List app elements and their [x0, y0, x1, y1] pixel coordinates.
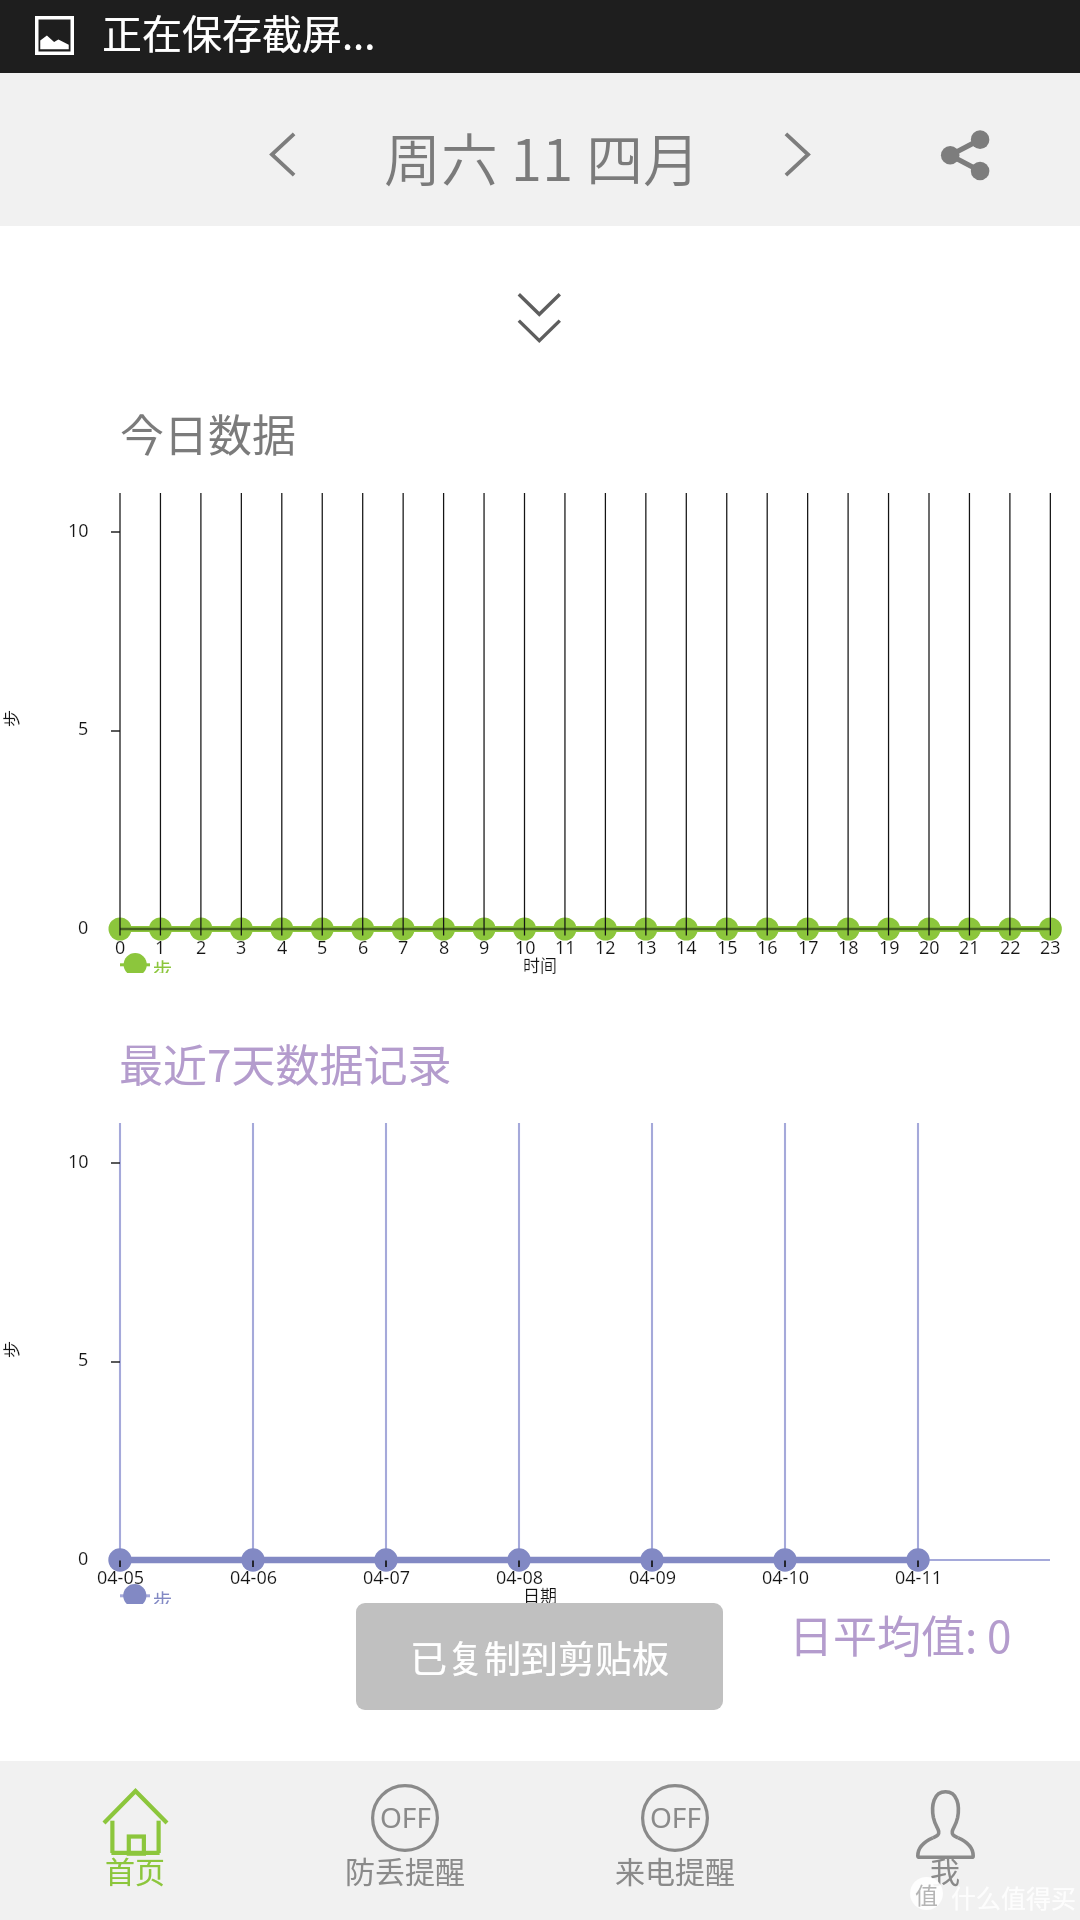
button[interactable]: Home: [0, 1761, 270, 1920]
staticText: 20: [919, 935, 940, 959]
staticText: 04-08: [496, 1565, 543, 1589]
button[interactable]: Next day: [752, 109, 842, 199]
staticText: 周六 11 四月: [384, 115, 701, 198]
staticText: 21: [959, 935, 980, 959]
staticText: 来电提醒: [615, 1848, 735, 1891]
staticText: 11: [555, 935, 576, 959]
staticText: 1: [155, 935, 166, 959]
staticText: 13: [636, 935, 657, 959]
staticText: 04-07: [363, 1565, 410, 1589]
staticText: OFF: [650, 1798, 701, 1836]
staticText: 04-05: [97, 1565, 144, 1589]
staticText: 0: [78, 1546, 89, 1571]
staticText: 5: [78, 716, 89, 741]
staticText: 已复制到剪贴板: [410, 1630, 669, 1684]
staticText: 日期: [523, 1582, 557, 1606]
button[interactable]: Incoming call reminder: [540, 1761, 810, 1920]
staticText: 12: [595, 935, 616, 959]
button[interactable]: Previous day: [238, 109, 328, 199]
staticText: 14: [676, 935, 697, 959]
staticText: 什么值得买: [951, 1879, 1077, 1915]
staticText: 首页: [105, 1848, 165, 1891]
staticText: 22: [1000, 935, 1021, 959]
staticText: 步: [153, 955, 173, 973]
staticText: 今日数据: [120, 401, 296, 465]
staticText: 5: [78, 1347, 89, 1372]
staticText: 最近7天数据记录: [119, 1031, 452, 1095]
staticText: 10: [68, 518, 89, 543]
staticText: 04-10: [762, 1565, 809, 1589]
staticText: 0: [78, 915, 89, 940]
staticText: 步: [0, 710, 23, 727]
button[interactable]: Profile: [810, 1761, 1080, 1920]
staticText: 19: [879, 935, 900, 959]
staticText: 18: [838, 935, 859, 959]
staticText: 04-06: [230, 1565, 277, 1589]
staticText: 时间: [523, 952, 557, 976]
staticText: 正在保存截屏...: [102, 3, 376, 61]
staticText: 10: [68, 1149, 89, 1174]
staticText: 2: [196, 935, 207, 959]
staticText: 我: [930, 1848, 960, 1891]
staticText: 防丢提醒: [345, 1848, 465, 1891]
staticText: 17: [798, 935, 819, 959]
staticText: 5: [317, 935, 328, 959]
staticText: 8: [439, 935, 450, 959]
staticText: 04-11: [895, 1565, 942, 1589]
staticText: 16: [757, 935, 778, 959]
staticText: 23: [1040, 935, 1061, 959]
staticText: 7: [398, 935, 409, 959]
button[interactable]: Share: [920, 110, 1010, 200]
staticText: 3: [236, 935, 247, 959]
staticText: 日平均值: 0: [789, 1602, 1012, 1666]
button[interactable]: Anti-lost reminder: [270, 1761, 540, 1920]
staticText: OFF: [380, 1798, 431, 1836]
staticText: 4: [277, 935, 288, 959]
staticText: 6: [358, 935, 369, 959]
staticText: 值: [915, 1877, 938, 1910]
staticText: 10: [515, 935, 536, 959]
staticText: 15: [717, 935, 738, 959]
button[interactable]: 已复制到剪贴板: [356, 1603, 723, 1710]
staticText: 9: [479, 935, 490, 959]
staticText: 步: [153, 1586, 173, 1604]
staticText: 0: [115, 935, 126, 959]
staticText: 步: [0, 1341, 23, 1358]
staticText: 04-09: [629, 1565, 676, 1589]
